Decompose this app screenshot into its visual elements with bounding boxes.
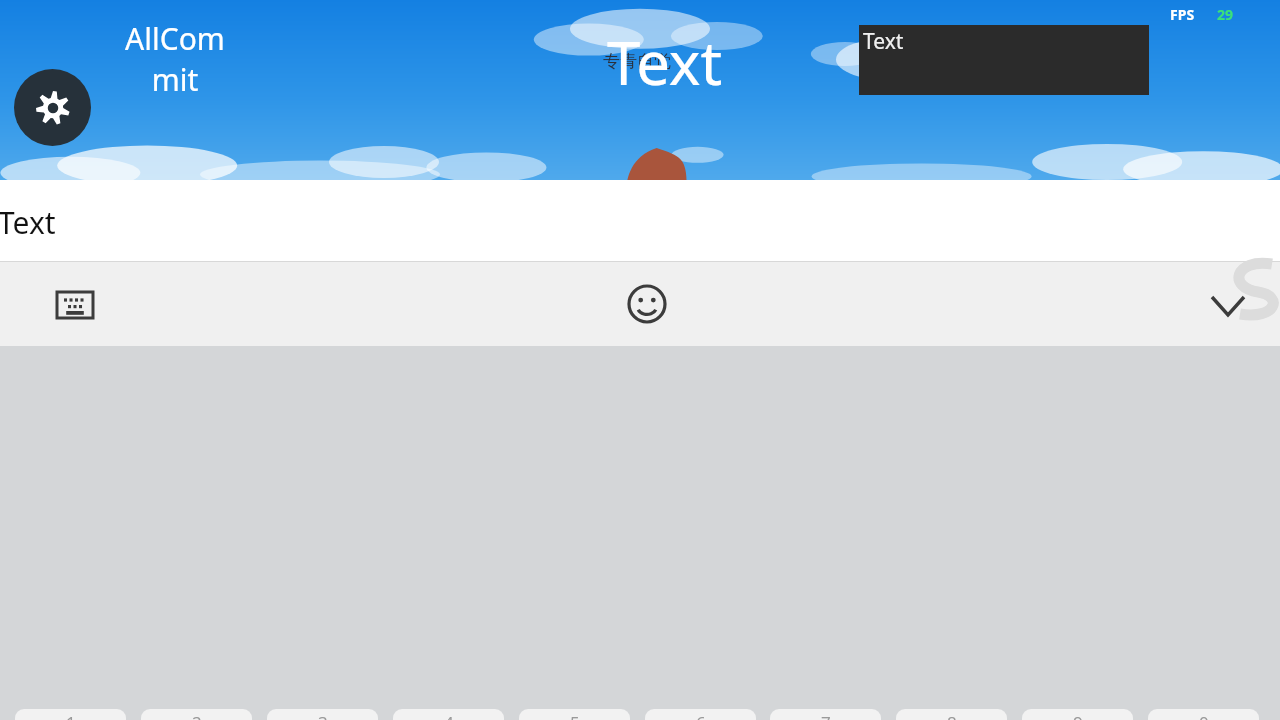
button[interactable]: Emoji <box>623 280 671 328</box>
staticText: Text <box>607 21 723 103</box>
button[interactable]: 3 <box>267 709 378 720</box>
staticText: 3 <box>318 711 328 720</box>
button[interactable]: 7 <box>770 709 881 720</box>
staticText: 4 <box>444 711 454 720</box>
staticText: 6 <box>696 711 706 720</box>
staticText: 0 <box>1199 711 1209 720</box>
button[interactable]: Hide keyboard <box>1202 280 1254 332</box>
button[interactable]: 6 <box>645 709 756 720</box>
button[interactable]: Text <box>859 25 1149 95</box>
button[interactable]: 9 <box>1022 709 1133 720</box>
staticText: 7 <box>821 711 831 720</box>
button[interactable]: Text <box>0 180 1280 262</box>
staticText: Text <box>863 27 904 56</box>
button[interactable]: 1 <box>15 709 126 720</box>
staticText: 1 <box>66 711 76 720</box>
button[interactable]: Settings <box>14 69 91 146</box>
staticText: FPS <box>1170 5 1195 24</box>
button[interactable]: 2 <box>141 709 252 720</box>
staticText: 9 <box>1073 711 1083 720</box>
button[interactable]: 8 <box>896 709 1007 720</box>
button[interactable]: 0 <box>1148 709 1259 720</box>
staticText: 5 <box>570 711 580 720</box>
button[interactable]: Switch keyboard <box>52 282 98 328</box>
staticText: 29 <box>1217 5 1234 24</box>
staticText: Text <box>0 202 56 243</box>
staticText: AllCom mit <box>115 18 235 100</box>
staticText: 2 <box>192 711 202 720</box>
button[interactable]: 5 <box>519 709 630 720</box>
staticText: 专青自觉 <box>603 51 671 72</box>
button[interactable]: 4 <box>393 709 504 720</box>
staticText: 8 <box>947 711 957 720</box>
